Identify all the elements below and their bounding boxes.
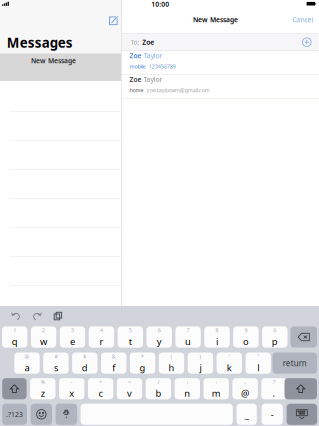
button[interactable]: Paste <box>54 311 62 320</box>
button[interactable]: 4 <box>89 326 114 348</box>
button[interactable]: $ <box>72 352 97 374</box>
button[interactable]: @ <box>14 352 40 374</box>
staticText: u <box>185 335 191 348</box>
button[interactable]: Add contact <box>302 38 311 46</box>
button[interactable]: = <box>117 378 142 399</box>
button[interactable]: return <box>272 352 317 374</box>
button[interactable]: New Message <box>0 53 121 81</box>
staticText: t <box>129 335 132 348</box>
button[interactable]: Redo <box>32 311 42 321</box>
staticText: ) <box>199 353 201 360</box>
button[interactable]: 1 <box>2 326 27 348</box>
button[interactable]: Hide keyboard <box>287 404 317 425</box>
button[interactable]: 8 <box>204 326 230 348</box>
button[interactable]: Dictation <box>56 404 77 425</box>
staticText: - <box>71 378 73 386</box>
button[interactable]: Undo <box>11 311 21 321</box>
staticText: o <box>243 335 249 348</box>
staticText: 7 <box>187 327 190 334</box>
button[interactable]: 5 <box>118 326 143 348</box>
staticText: w <box>40 335 47 348</box>
staticText: mobile <box>130 63 146 70</box>
staticText: $ <box>83 353 86 360</box>
staticText: r <box>99 335 103 348</box>
button[interactable]: - <box>59 378 84 399</box>
staticText: return <box>283 358 307 368</box>
staticText: s <box>54 361 58 374</box>
staticText: e <box>70 335 75 348</box>
button[interactable]: - <box>262 404 283 425</box>
staticText: x <box>69 387 74 399</box>
button[interactable]: Zoe <box>122 51 319 74</box>
button[interactable]: ' <box>217 352 242 374</box>
button[interactable]: + <box>88 378 113 399</box>
staticText: .?123 <box>6 410 23 419</box>
button[interactable]: Cancel <box>290 13 315 26</box>
button[interactable]: 6 <box>146 326 172 348</box>
button[interactable]: # <box>43 352 69 374</box>
staticText: , <box>245 378 246 386</box>
staticText: 2 <box>42 327 45 334</box>
staticText: ' <box>229 353 230 360</box>
button[interactable]: 7 <box>175 326 201 348</box>
staticText: j <box>199 361 201 374</box>
staticText: 6 <box>158 327 161 334</box>
staticText: b <box>155 387 161 399</box>
button[interactable]: & <box>101 352 126 374</box>
staticText: To: <box>130 38 139 47</box>
staticText: p <box>272 335 278 348</box>
button[interactable]: / <box>146 378 171 399</box>
button[interactable]: 0 <box>262 326 287 348</box>
staticText: = <box>128 378 131 386</box>
staticText: New Message <box>31 56 76 65</box>
button[interactable]: : <box>203 378 229 399</box>
button[interactable]: * <box>130 352 155 374</box>
button[interactable]: Emoji <box>31 404 52 425</box>
button[interactable]: Shift <box>2 378 27 399</box>
staticText: / <box>157 378 159 386</box>
button[interactable]: , <box>232 378 258 399</box>
button[interactable]: Compose <box>109 16 118 25</box>
staticText: Messages <box>7 34 73 51</box>
staticText: 4 <box>100 327 103 334</box>
staticText: . <box>272 387 275 399</box>
staticText: 123456789 <box>149 63 176 70</box>
staticText: Taylor <box>144 75 163 84</box>
button[interactable]: ? <box>261 378 287 399</box>
button[interactable]: Delete <box>290 326 317 348</box>
button[interactable]: Zoe <box>122 75 319 98</box>
button[interactable]: ( <box>159 352 184 374</box>
staticText: - <box>271 408 274 420</box>
staticText: 10:00 <box>151 0 169 9</box>
staticText: Cancel <box>292 15 313 24</box>
button[interactable]: 3 <box>60 326 85 348</box>
button[interactable]: ; <box>175 378 200 399</box>
staticText: y <box>157 335 162 348</box>
staticText: f <box>112 361 115 374</box>
button[interactable]: % <box>30 378 55 399</box>
staticText: q <box>12 335 18 348</box>
staticText: g <box>140 361 146 374</box>
button[interactable]: .?123 <box>2 404 27 425</box>
staticText: m <box>212 387 221 399</box>
staticText: c <box>99 387 103 399</box>
staticText: + <box>99 378 102 386</box>
button[interactable]: ) <box>188 352 213 374</box>
staticText: ? <box>273 378 275 386</box>
button[interactable]: " <box>245 352 271 374</box>
button[interactable]: 9 <box>233 326 259 348</box>
button[interactable]: _ <box>237 404 257 425</box>
staticText: : <box>216 378 217 386</box>
button[interactable]: Shift <box>284 378 317 399</box>
button[interactable]: 2 <box>31 326 56 348</box>
staticText: Zoe <box>130 75 142 84</box>
